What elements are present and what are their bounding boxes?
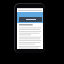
button[interactable]: Address bar — [17, 9, 43, 12]
button[interactable]: Promo banner — [19, 17, 42, 22]
